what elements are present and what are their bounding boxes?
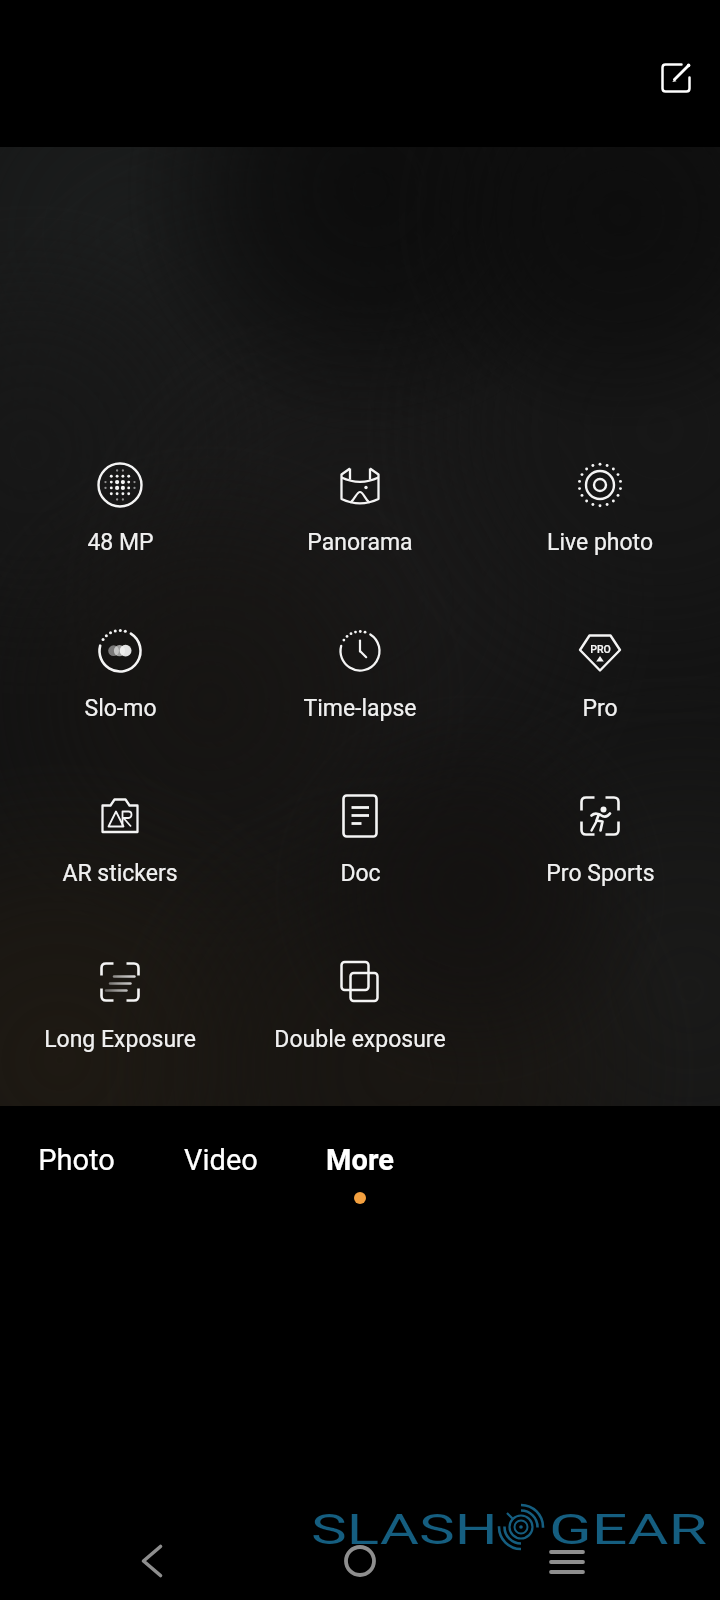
button[interactable]: Double exposure — [245, 948, 475, 1053]
button[interactable]: AR stickers — [5, 782, 235, 887]
staticText: 48 MP — [87, 529, 154, 556]
staticText: GEAR — [549, 1504, 708, 1554]
button[interactable]: Back — [122, 1531, 182, 1591]
staticText: Live photo — [547, 529, 653, 556]
staticText: SLASH — [311, 1504, 499, 1554]
button[interactable]: Home — [330, 1531, 390, 1591]
staticText: Doc — [340, 860, 381, 887]
button[interactable]: Video — [136, 1136, 306, 1184]
button[interactable]: Photo — [0, 1136, 161, 1184]
staticText: Time-lapse — [303, 695, 417, 722]
staticText: Pro Sports — [546, 860, 655, 887]
staticText: More — [326, 1143, 394, 1177]
button[interactable]: Long Exposure — [5, 948, 235, 1053]
staticText: Panorama — [307, 529, 413, 556]
button[interactable]: Panorama — [245, 451, 475, 556]
staticText: Long Exposure — [44, 1026, 196, 1053]
staticText: Video — [184, 1143, 258, 1177]
button[interactable]: More — [275, 1136, 445, 1184]
button[interactable]: PRO — [485, 617, 715, 722]
staticText: PRO — [590, 643, 611, 655]
button[interactable]: Doc — [245, 782, 475, 887]
staticText: Slo-mo — [84, 695, 157, 722]
button[interactable]: Pro Sports — [485, 782, 715, 887]
staticText: Pro — [582, 695, 618, 722]
button[interactable]: Live photo — [485, 451, 715, 556]
staticText: Photo — [38, 1143, 115, 1177]
button[interactable]: 48 MP — [5, 451, 235, 556]
button[interactable]: Slo-mo — [5, 617, 235, 722]
staticText: AR stickers — [62, 860, 178, 887]
button[interactable]: Edit camera modes — [650, 52, 702, 104]
staticText: Double exposure — [274, 1026, 446, 1053]
button[interactable]: Recent apps — [537, 1532, 597, 1592]
button[interactable]: Time-lapse — [245, 617, 475, 722]
